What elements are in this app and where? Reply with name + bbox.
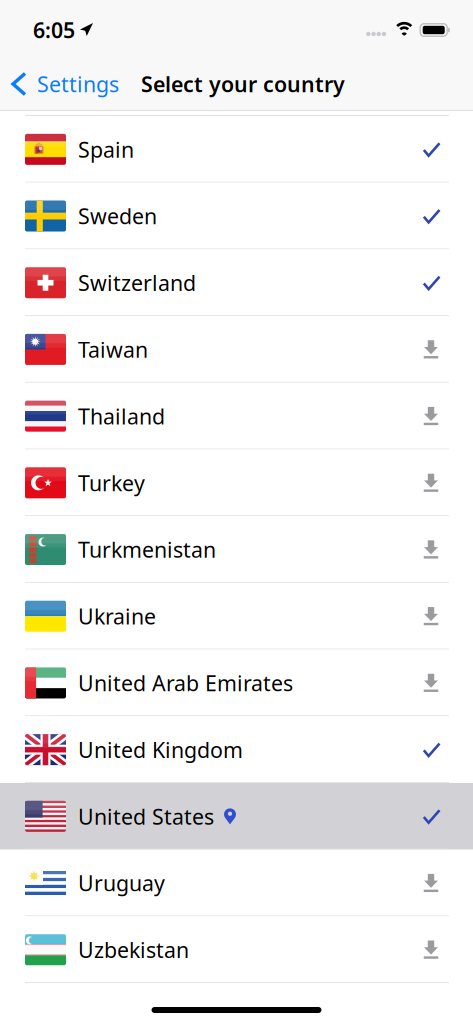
button[interactable]: United States: [0, 783, 473, 850]
staticText: 6:05: [33, 16, 75, 44]
staticText: United States: [78, 802, 214, 830]
button[interactable]: Thailand: [0, 383, 473, 449]
staticText: Thailand: [78, 402, 165, 430]
button[interactable]: Ukraine: [0, 583, 473, 650]
staticText: Turkmenistan: [78, 535, 216, 564]
button[interactable]: Taiwan: [0, 316, 473, 383]
button[interactable]: Settings: [0, 62, 131, 106]
button[interactable]: United Kingdom: [0, 716, 473, 783]
staticText: Spain: [78, 135, 134, 163]
button[interactable]: Uruguay: [0, 850, 473, 916]
staticText: Select your country: [141, 70, 345, 98]
staticText: Taiwan: [78, 335, 148, 364]
staticText: United Kingdom: [78, 735, 243, 764]
button[interactable]: Turkmenistan: [0, 516, 473, 583]
staticText: Sweden: [78, 202, 157, 230]
button[interactable]: United Arab Emirates: [0, 650, 473, 716]
staticText: Turkey: [78, 469, 145, 497]
button[interactable]: Spain: [0, 116, 473, 183]
button[interactable]: Uzbekistan: [0, 916, 473, 983]
button[interactable]: Turkey: [0, 449, 473, 516]
staticText: Settings: [37, 70, 119, 98]
staticText: Ukraine: [78, 602, 156, 630]
button[interactable]: Sweden: [0, 183, 473, 249]
button[interactable]: Switzerland: [0, 249, 473, 316]
staticText: Uzbekistan: [78, 936, 189, 964]
staticText: United Arab Emirates: [78, 669, 293, 697]
staticText: Switzerland: [78, 269, 196, 297]
staticText: Uruguay: [78, 869, 165, 897]
